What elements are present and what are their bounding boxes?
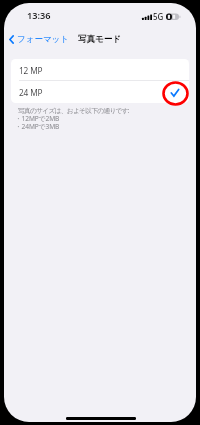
staticText: 24 MP: [19, 87, 43, 98]
button[interactable]: Back: [6, 32, 73, 47]
staticText: ・24MPで3MB: [15, 122, 60, 131]
other: Back: [9, 35, 14, 44]
button[interactable]: 12 MP: [11, 59, 189, 80]
button[interactable]: 24 MP: [11, 81, 189, 103]
staticText: 写真のサイズは、およそ以下の通りです:: [18, 106, 130, 115]
staticText: 12 MP: [19, 65, 43, 76]
staticText: フォーマット: [17, 34, 69, 45]
other: Selected 24 MP: [171, 89, 179, 97]
staticText: 写真モード: [78, 34, 121, 45]
staticText: 5G: [153, 11, 164, 22]
staticText: ・12MPで2MB: [15, 114, 60, 123]
staticText: 13:36: [27, 9, 51, 22]
